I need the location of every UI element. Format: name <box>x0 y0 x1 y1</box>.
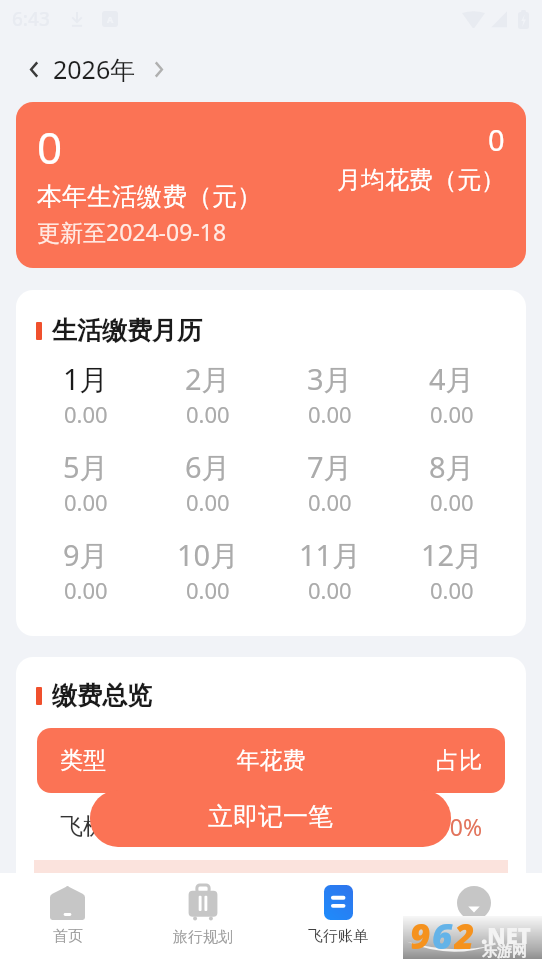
staticText: 0.00 <box>186 575 230 605</box>
staticText: 0.00 <box>186 399 230 429</box>
button[interactable]: 旅行规划 <box>135 873 270 958</box>
staticText: 0.00 <box>430 399 474 429</box>
staticText: 12月 <box>421 535 484 575</box>
staticText: 立即记一笔 <box>208 801 333 832</box>
staticText: 9月 <box>63 535 109 575</box>
staticText: 0.00 <box>186 487 230 517</box>
button[interactable]: 首页 <box>0 873 135 958</box>
staticText: 0.00 <box>64 575 108 605</box>
button[interactable]: 12月 <box>391 535 513 623</box>
staticText: 0 <box>37 117 63 177</box>
staticText: 9 <box>410 912 432 955</box>
staticText: 占比 <box>349 746 482 775</box>
staticText: 我的 <box>459 927 489 946</box>
staticText: 年花费 <box>193 746 349 775</box>
button[interactable]: 0 <box>16 102 526 268</box>
staticText: 0.00 <box>308 399 352 429</box>
staticText: 0.00 <box>308 575 352 605</box>
button[interactable]: 7月 <box>269 447 391 535</box>
staticText: 乐游网 <box>482 942 527 961</box>
staticText: 缴费总览 <box>52 680 152 711</box>
staticText: 6 <box>432 912 454 955</box>
button[interactable]: 我的 <box>406 873 542 958</box>
staticText: A <box>107 13 114 25</box>
staticText: 3月 <box>307 359 353 399</box>
staticText: 0.00 <box>430 575 474 605</box>
button[interactable]: 8月 <box>391 447 513 535</box>
staticText: 8月 <box>429 447 475 487</box>
staticText: 类型 <box>60 746 193 775</box>
staticText: 本年生活缴费（元） <box>37 181 262 212</box>
button[interactable]: 3月 <box>269 359 391 447</box>
button[interactable]: 5月 <box>24 447 147 535</box>
staticText: 更新至2024-09-18 <box>37 216 227 247</box>
staticText: 11月 <box>299 535 362 575</box>
staticText: 首页 <box>53 927 83 946</box>
staticText: 0.00 <box>308 487 352 517</box>
button[interactable]: 6月 <box>147 447 269 535</box>
staticText: 0.00 <box>64 399 108 429</box>
button[interactable]: 飞行账单 <box>270 873 406 958</box>
staticText: 1月 <box>63 359 109 399</box>
staticText: 4月 <box>429 359 475 399</box>
staticText: 2026年 <box>53 52 136 86</box>
staticText: 5月 <box>63 447 109 487</box>
staticText: 6月 <box>185 447 231 487</box>
staticText: 0.00 <box>64 487 108 517</box>
staticText: 6:43 <box>12 6 50 32</box>
button[interactable]: 2月 <box>147 359 269 447</box>
staticText: 生活缴费月历 <box>52 315 202 346</box>
staticText: 2 <box>454 912 476 955</box>
staticText: 0.00 <box>430 487 474 517</box>
staticText: 0% <box>349 811 482 842</box>
staticText: 月均花费（元） <box>337 165 505 195</box>
button[interactable]: 立即记一笔 <box>90 790 451 847</box>
button[interactable]: Next year <box>146 57 170 81</box>
staticText: 飞机 <box>60 812 193 841</box>
button[interactable]: Previous year <box>22 57 46 81</box>
staticText: .NET <box>481 920 531 950</box>
staticText: 飞行账单 <box>308 927 368 946</box>
staticText: 2月 <box>185 359 231 399</box>
button[interactable]: 1月 <box>24 359 147 447</box>
staticText: 旅行规划 <box>173 928 233 947</box>
button[interactable]: 11月 <box>269 535 391 623</box>
staticText: 0.00 <box>193 811 349 842</box>
button[interactable]: 10月 <box>147 535 269 623</box>
staticText: 7月 <box>307 447 353 487</box>
button[interactable]: 4月 <box>391 359 513 447</box>
staticText: 0 <box>488 120 505 159</box>
staticText: 10月 <box>177 535 240 575</box>
button[interactable]: 9月 <box>24 535 147 623</box>
